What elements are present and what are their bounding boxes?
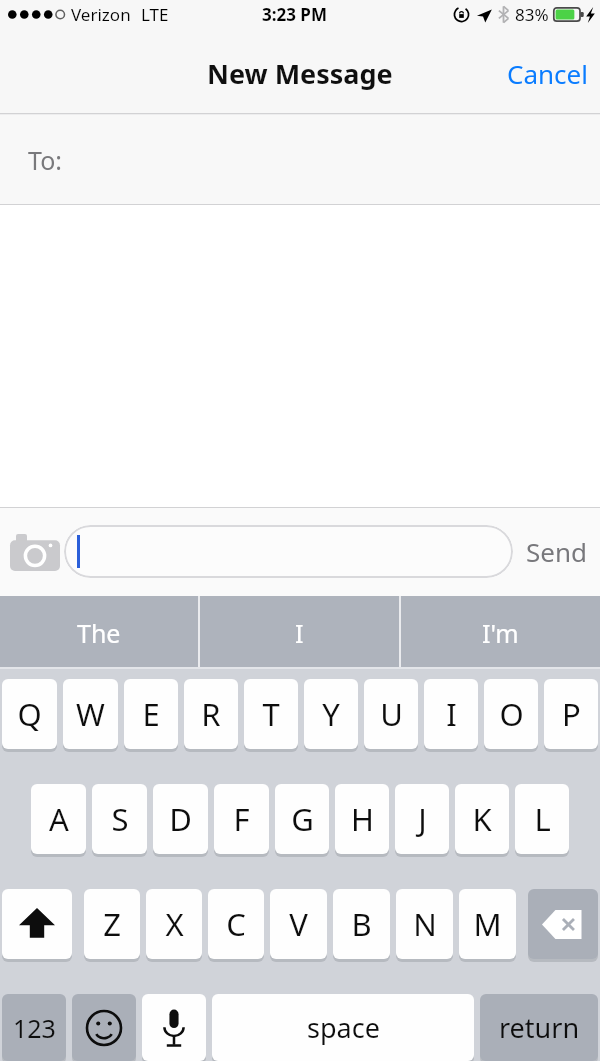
button[interactable]: B — [333, 889, 390, 959]
button[interactable]: F — [214, 784, 269, 854]
button[interactable]: Dictation — [142, 994, 206, 1061]
button[interactable]: To: — [0, 114, 600, 205]
button[interactable]: D — [153, 784, 208, 854]
button[interactable]: W — [63, 679, 118, 749]
staticText: R — [201, 693, 221, 735]
staticText: D — [169, 798, 192, 840]
button[interactable]: Z — [84, 889, 140, 959]
staticText: U — [380, 693, 403, 735]
button[interactable]: P — [544, 679, 598, 749]
button[interactable]: Delete — [528, 889, 598, 959]
button[interactable]: G — [275, 784, 329, 854]
button[interactable]: Y — [304, 679, 358, 749]
staticText: H — [351, 798, 374, 840]
staticText: Y — [322, 693, 340, 735]
staticText: I — [446, 693, 457, 735]
button[interactable]: O — [484, 679, 538, 749]
staticText: Q — [17, 693, 42, 735]
staticText: space — [307, 1009, 380, 1046]
button[interactable] — [64, 525, 513, 578]
button[interactable]: A — [31, 784, 86, 854]
button[interactable]: The — [0, 596, 198, 669]
staticText: To: — [28, 143, 62, 177]
staticText: S — [111, 798, 129, 840]
staticText: G — [291, 798, 314, 840]
staticText: C — [226, 903, 246, 945]
staticText: N — [413, 903, 437, 945]
staticText: V — [289, 903, 308, 945]
button[interactable]: V — [270, 889, 327, 959]
staticText: Send — [526, 534, 587, 569]
button[interactable]: T — [244, 679, 298, 749]
staticText: return — [499, 1009, 580, 1046]
staticText: 3:23 PM — [262, 3, 327, 26]
staticText: 123 — [13, 1011, 56, 1045]
button[interactable]: L — [515, 784, 569, 854]
staticText: B — [351, 903, 372, 945]
staticText: New Message — [207, 55, 393, 92]
button[interactable]: Q — [2, 679, 57, 749]
staticText: K — [472, 798, 492, 840]
button[interactable]: Attach photo — [6, 525, 64, 579]
staticText: P — [562, 693, 581, 735]
button[interactable]: I — [200, 596, 399, 669]
staticText: Z — [103, 903, 121, 945]
button[interactable]: E — [124, 679, 178, 749]
button[interactable]: M — [459, 889, 516, 959]
button[interactable]: space — [212, 994, 474, 1061]
button[interactable]: Shift — [2, 889, 72, 959]
staticText: J — [418, 798, 427, 840]
button[interactable]: N — [396, 889, 453, 959]
staticText: M — [473, 903, 502, 945]
button[interactable]: Emoji — [72, 994, 136, 1061]
staticText: I'm — [482, 616, 519, 650]
staticText: L — [534, 798, 551, 840]
staticText: LTE — [141, 3, 169, 26]
button[interactable]: H — [335, 784, 389, 854]
staticText: The — [77, 616, 121, 650]
button[interactable]: K — [455, 784, 509, 854]
staticText: I — [295, 616, 304, 650]
button[interactable]: U — [364, 679, 418, 749]
button[interactable]: J — [395, 784, 449, 854]
staticText: E — [142, 693, 160, 735]
button[interactable]: I — [424, 679, 478, 749]
staticText: Cancel — [507, 56, 588, 91]
staticText: Verizon — [71, 3, 131, 26]
button[interactable]: return — [480, 994, 598, 1061]
button[interactable]: R — [184, 679, 238, 749]
staticText: X — [165, 903, 184, 945]
button[interactable]: 123 — [2, 994, 66, 1061]
button[interactable]: S — [92, 784, 147, 854]
button[interactable]: Cancel — [495, 44, 600, 103]
staticText: T — [262, 693, 280, 735]
button[interactable]: Send — [513, 522, 600, 581]
staticText: W — [76, 693, 105, 735]
staticText: 83% — [515, 3, 549, 26]
button[interactable]: C — [208, 889, 264, 959]
staticText: O — [499, 693, 524, 735]
button[interactable]: I'm — [401, 596, 600, 669]
staticText: A — [49, 798, 69, 840]
button[interactable]: X — [146, 889, 202, 959]
staticText: F — [233, 798, 250, 840]
